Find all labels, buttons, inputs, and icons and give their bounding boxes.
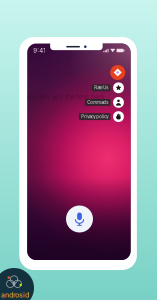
button[interactable]: Start listening bbox=[66, 205, 93, 232]
staticText: Commads bbox=[87, 100, 108, 105]
staticText: You will see the text here bbox=[25, 93, 105, 101]
button[interactable]: Commads bbox=[85, 97, 124, 108]
button[interactable]: Privacy policy bbox=[79, 111, 124, 122]
staticText: Privacy policy bbox=[81, 114, 108, 119]
staticText: Rate Us bbox=[94, 85, 108, 90]
button[interactable]: Menu bbox=[110, 65, 125, 80]
staticText: androsid bbox=[1, 291, 29, 299]
button[interactable]: Rate Us bbox=[92, 82, 124, 93]
staticText: 9:41 bbox=[33, 47, 45, 54]
